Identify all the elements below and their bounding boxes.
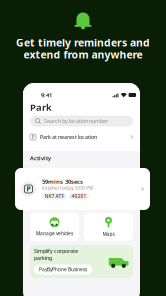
- button[interactable]: Manage vehicles: [30, 213, 79, 241]
- button[interactable]: Maps: [84, 213, 133, 241]
- staticText: Maps: [102, 231, 114, 237]
- staticText: Park at nearest location: [40, 133, 97, 141]
- button[interactable]: P: [15, 168, 150, 210]
- staticText: PayByPhone Business: [39, 266, 87, 273]
- staticText: Get timely reminders and: [16, 35, 150, 50]
- staticText: Park: [30, 100, 52, 114]
- staticText: P: [31, 134, 34, 140]
- button[interactable]: PayByPhone Business: [34, 264, 92, 274]
- staticText: Expires today, 5:00 PM: [42, 185, 93, 191]
- staticText: Activity: [30, 154, 51, 162]
- staticText: 9:41: [41, 91, 52, 99]
- staticText: Manage vehicles: [36, 230, 73, 237]
- button[interactable]: P: [23, 126, 140, 147]
- staticText: parking: [34, 254, 52, 262]
- staticText: 40201: [71, 193, 86, 199]
- staticText: P: [26, 184, 30, 193]
- staticText: NK7 ATF: [44, 193, 63, 199]
- staticText: 59mins 30secs: [42, 177, 83, 185]
- staticText: Simplify corporate: [34, 247, 78, 255]
- staticText: extend from anywhere: [23, 47, 142, 62]
- button[interactable]: Search by location number: [23, 115, 140, 126]
- staticText: Search by location number: [44, 117, 108, 125]
